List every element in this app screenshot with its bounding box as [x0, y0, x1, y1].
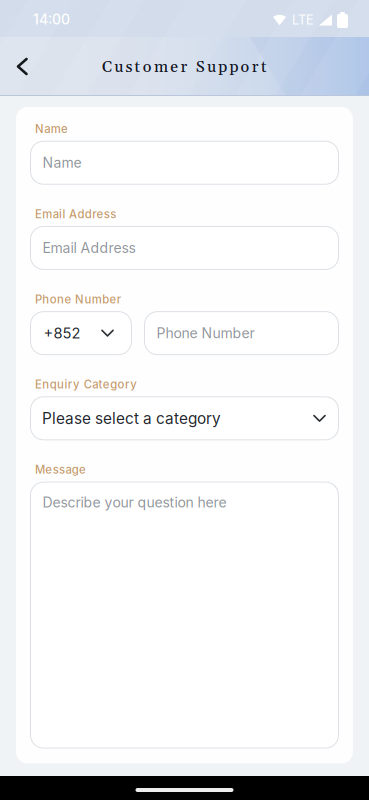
button[interactable]: Please select a category — [30, 396, 339, 440]
staticText: o — [241, 58, 250, 77]
staticText: r — [180, 58, 187, 77]
staticText: p — [229, 58, 238, 77]
staticText: C — [102, 58, 112, 77]
staticText: u — [207, 58, 216, 77]
staticText: Name — [42, 154, 81, 171]
staticText: Phone Number — [35, 292, 121, 306]
staticText: LTE — [292, 12, 314, 28]
button[interactable]: Phone Number — [144, 311, 339, 355]
button[interactable]: Name — [30, 141, 339, 185]
staticText: S — [196, 58, 205, 77]
button[interactable] — [0, 47, 26, 86]
staticText: Email Address — [42, 239, 135, 256]
staticText: o — [143, 58, 152, 77]
staticText: Email Address — [35, 207, 116, 221]
staticText: Describe your question here — [42, 494, 226, 511]
staticText: Phone Number — [156, 325, 254, 342]
button[interactable]: Email Address — [30, 226, 339, 270]
staticText: m — [154, 58, 168, 77]
button[interactable]: +852 — [30, 311, 132, 355]
staticText: s — [125, 58, 132, 77]
staticText: u — [114, 58, 123, 77]
staticText: p — [218, 58, 227, 77]
staticText: t — [135, 58, 141, 77]
staticText: Please select a category — [42, 409, 221, 428]
staticText: Enquiry Category — [35, 378, 137, 391]
button[interactable]: Describe your question here — [30, 482, 339, 749]
staticText: r — [252, 58, 259, 77]
staticText: Name — [35, 122, 68, 136]
staticText: +852 — [43, 324, 80, 342]
staticText: 14:00 — [33, 11, 70, 28]
staticText: Message — [35, 463, 86, 476]
staticText: t — [261, 58, 267, 77]
staticText: e — [170, 58, 178, 77]
